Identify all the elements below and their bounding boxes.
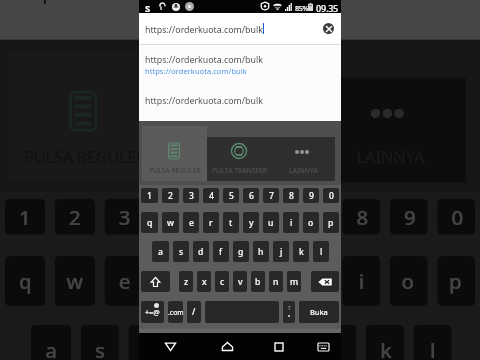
button[interactable]: d [193, 241, 209, 262]
button[interactable]: f [176, 325, 214, 360]
button[interactable]: g [233, 241, 249, 262]
button[interactable]: Buka [299, 301, 339, 323]
button[interactable]: / [187, 301, 201, 323]
button[interactable]: l [313, 241, 329, 262]
button[interactable]: e [105, 256, 143, 306]
button[interactable]: n [269, 271, 283, 292]
button[interactable]: 2 [162, 188, 179, 203]
button[interactable]: k [366, 325, 404, 360]
button[interactable]: v [233, 271, 247, 292]
button[interactable]: c [215, 271, 229, 292]
button[interactable]: 7 [263, 188, 279, 203]
button[interactable]: Recent apps [253, 333, 305, 360]
button[interactable]: Backspace [311, 271, 339, 292]
button[interactable]: j [318, 325, 356, 360]
button[interactable]: m [287, 271, 301, 292]
button[interactable]: 2 [55, 199, 95, 235]
button[interactable]: o [390, 256, 428, 306]
button[interactable]: 5 [200, 199, 238, 235]
button[interactable]: Period [283, 301, 295, 323]
button[interactable]: 7 [295, 199, 333, 235]
staticText: c [220, 276, 225, 288]
button[interactable]: https://orderkuota.com/bulk [0, 0, 480, 18]
button[interactable]: y [247, 256, 285, 306]
button[interactable]: p [323, 212, 339, 233]
button[interactable]: k [293, 241, 309, 262]
button[interactable]: j [273, 241, 289, 262]
button[interactable]: r [152, 256, 190, 306]
button[interactable]: f [213, 241, 229, 262]
button[interactable]: PULSA REGULER [7, 52, 162, 182]
button[interactable]: 1 [141, 188, 158, 203]
button[interactable]: PULSA TRANSFER [207, 137, 335, 181]
button[interactable]: 0 [323, 188, 339, 203]
button[interactable]: t [223, 212, 239, 233]
button[interactable]: 8 [283, 188, 299, 203]
staticText: 7 [309, 204, 321, 232]
button[interactable]: a [152, 241, 169, 262]
button[interactable]: i [342, 256, 380, 306]
button[interactable]: q [141, 212, 158, 233]
staticText: m [290, 276, 299, 288]
button[interactable]: Back [139, 333, 201, 360]
button[interactable]: i [283, 212, 299, 233]
button[interactable]: s [173, 241, 189, 262]
button[interactable]: 3 [105, 199, 143, 235]
staticText: w [67, 268, 83, 296]
button[interactable]: a [31, 325, 71, 360]
button[interactable]: .com [168, 301, 183, 323]
button[interactable]: Clear text [323, 23, 334, 34]
button[interactable]: 9 [390, 199, 428, 235]
staticText: h [283, 337, 297, 360]
button[interactable]: Symbols [141, 301, 164, 323]
button[interactable]: d [128, 325, 166, 360]
button[interactable]: 5 [223, 188, 239, 203]
button[interactable]: 6 [243, 188, 259, 203]
button[interactable]: Switch keyboard [305, 333, 341, 360]
staticText: https://orderkuota.com/bulk [145, 95, 263, 107]
button[interactable]: 8 [342, 199, 380, 235]
button[interactable]: s [81, 325, 119, 360]
button[interactable]: g [223, 325, 261, 360]
staticText: 1 [147, 190, 152, 202]
button[interactable]: 0 [437, 199, 475, 235]
button[interactable]: PULSA REGULER [142, 126, 207, 181]
staticText: https://orderkuota.com/bulk [145, 24, 263, 36]
button[interactable]: 4 [152, 199, 190, 235]
button[interactable]: PULSA TRANSFER [162, 78, 466, 182]
button[interactable]: 6 [247, 199, 285, 235]
button[interactable]: https://orderkuota.com/bulk [139, 46, 341, 80]
staticText: PULSA REGULER [149, 166, 201, 176]
button[interactable]: u [295, 256, 333, 306]
button[interactable]: 4 [203, 188, 219, 203]
button[interactable]: h [271, 325, 309, 360]
button[interactable]: l [413, 325, 451, 360]
button[interactable]: https://orderkuota.com/bulk [139, 90, 341, 112]
button[interactable]: u [263, 212, 279, 233]
button[interactable]: t [200, 256, 238, 306]
button[interactable]: https://orderkuota.com/bulk [139, 13, 341, 44]
staticText: 2 [168, 190, 173, 202]
button[interactable]: p [437, 256, 475, 306]
button[interactable]: r [203, 212, 219, 233]
button[interactable]: e [183, 212, 199, 233]
button[interactable]: w [162, 212, 179, 233]
button[interactable]: Home [201, 333, 253, 360]
button[interactable]: o [303, 212, 319, 233]
button[interactable]: 1 [5, 199, 45, 235]
button[interactable]: y [243, 212, 259, 233]
button[interactable]: x [197, 271, 211, 292]
button[interactable]: q [5, 256, 45, 306]
button[interactable]: 9 [303, 188, 319, 203]
button[interactable]: h [253, 241, 269, 262]
button[interactable]: w [55, 256, 95, 306]
button[interactable]: z [179, 271, 193, 292]
staticText: p [328, 217, 334, 229]
button[interactable]: b [251, 271, 265, 292]
button[interactable]: 3 [183, 188, 199, 203]
staticText: LAINNYA [289, 166, 318, 176]
button[interactable]: Shift [141, 271, 170, 292]
staticText: b [255, 276, 261, 288]
